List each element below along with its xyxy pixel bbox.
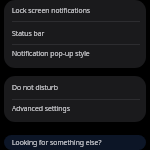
button[interactable]: Advanced settings [4, 100, 146, 117]
staticText: Advanced settings [12, 104, 70, 113]
button[interactable]: Notification pop-up style [4, 45, 146, 62]
staticText: Status bar [12, 29, 45, 38]
staticText: Lock screen notifications [12, 6, 91, 15]
staticText: Do not disturb [12, 83, 58, 92]
button[interactable]: Looking for something else? [4, 135, 146, 150]
button[interactable]: Do not disturb [4, 76, 146, 100]
button[interactable]: Status bar [4, 22, 146, 45]
staticText: Looking for something else? [12, 138, 102, 147]
staticText: Notification pop-up style [12, 49, 90, 58]
button[interactable]: Lock screen notifications [4, 0, 146, 22]
